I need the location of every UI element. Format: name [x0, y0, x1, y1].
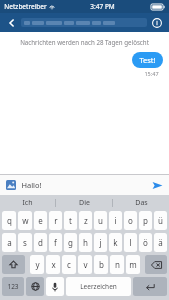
- staticText: t: [69, 215, 72, 226]
- button[interactable]: Details: [150, 16, 164, 30]
- staticText: z: [84, 215, 88, 226]
- button[interactable]: Ich: [0, 195, 55, 211]
- button[interactable]: s: [18, 233, 32, 252]
- button[interactable]: t: [64, 211, 77, 230]
- staticText: x: [51, 259, 56, 270]
- button[interactable]: c: [62, 255, 76, 274]
- button[interactable]: n: [110, 255, 124, 274]
- button[interactable]: q: [2, 211, 16, 230]
- button[interactable]: z: [79, 211, 92, 230]
- button[interactable]: v: [78, 255, 92, 274]
- button[interactable]: Change keyboard: [26, 277, 44, 296]
- button[interactable]: 123: [2, 277, 24, 296]
- button[interactable]: Dictate: [46, 277, 64, 296]
- staticText: 3:47 PM: [90, 2, 115, 11]
- staticText: w: [22, 215, 29, 226]
- staticText: b: [99, 259, 104, 270]
- staticText: Das: [135, 198, 148, 208]
- staticText: g: [68, 237, 73, 248]
- staticText: v: [83, 259, 88, 270]
- staticText: d: [38, 237, 43, 248]
- button[interactable]: w: [18, 211, 32, 230]
- staticText: p: [143, 215, 148, 226]
- staticText: ä: [158, 237, 163, 248]
- button[interactable]: Back: [5, 16, 19, 30]
- button[interactable]: l: [124, 233, 137, 252]
- staticText: o: [128, 215, 133, 226]
- button[interactable]: h: [79, 233, 92, 252]
- staticText: Hallo!: [21, 180, 42, 190]
- staticText: h: [83, 237, 88, 248]
- button[interactable]: e: [34, 211, 47, 230]
- staticText: j: [99, 237, 102, 248]
- button[interactable]: i: [109, 211, 122, 230]
- button[interactable]: k: [109, 233, 122, 252]
- button[interactable]: [21, 18, 147, 27]
- staticText: 15:47: [144, 70, 159, 77]
- staticText: y: [35, 259, 40, 270]
- staticText: 123: [7, 282, 19, 291]
- staticText: a: [7, 237, 12, 248]
- button[interactable]: j: [94, 233, 107, 252]
- button[interactable]: Test!: [132, 52, 163, 68]
- button[interactable]: d: [34, 233, 47, 252]
- button[interactable]: Return: [133, 277, 167, 296]
- staticText: Die: [79, 198, 90, 208]
- staticText: r: [54, 215, 58, 226]
- staticText: i: [114, 215, 117, 226]
- button[interactable]: r: [49, 211, 62, 230]
- button[interactable]: ü: [154, 211, 167, 230]
- staticText: Test!: [139, 55, 156, 65]
- button[interactable]: x: [46, 255, 60, 274]
- staticText: s: [23, 237, 27, 248]
- button[interactable]: a: [2, 233, 16, 252]
- staticText: m: [129, 259, 137, 270]
- staticText: Leerzeichen: [80, 282, 117, 291]
- button[interactable]: Send: [150, 178, 164, 192]
- button[interactable]: Hallo!: [21, 180, 150, 190]
- staticText: l: [129, 237, 132, 248]
- staticText: c: [67, 259, 71, 270]
- staticText: Nachrichten werden nach 28 Tagen gelösch…: [20, 38, 149, 46]
- staticText: n: [115, 259, 120, 270]
- button[interactable]: g: [64, 233, 77, 252]
- button[interactable]: Die: [56, 195, 112, 211]
- button[interactable]: y: [30, 255, 44, 274]
- staticText: f: [54, 237, 57, 248]
- staticText: Netzbetreiber: [4, 2, 47, 11]
- staticText: Ich: [22, 198, 33, 208]
- button[interactable]: Backspace: [145, 255, 167, 274]
- button[interactable]: o: [124, 211, 137, 230]
- button[interactable]: u: [94, 211, 107, 230]
- button[interactable]: p: [139, 211, 152, 230]
- button[interactable]: Leerzeichen: [66, 277, 131, 296]
- button[interactable]: ä: [154, 233, 167, 252]
- button[interactable]: Das: [113, 195, 169, 211]
- staticText: e: [38, 215, 43, 226]
- staticText: q: [7, 215, 12, 226]
- button[interactable]: Add photo: [5, 179, 17, 191]
- staticText: u: [98, 215, 103, 226]
- staticText: ü: [158, 215, 163, 226]
- staticText: ö: [143, 237, 148, 248]
- button[interactable]: m: [126, 255, 140, 274]
- button[interactable]: Shift: [2, 255, 25, 274]
- button[interactable]: ö: [139, 233, 152, 252]
- button[interactable]: b: [94, 255, 108, 274]
- staticText: k: [113, 237, 118, 248]
- button[interactable]: f: [49, 233, 62, 252]
